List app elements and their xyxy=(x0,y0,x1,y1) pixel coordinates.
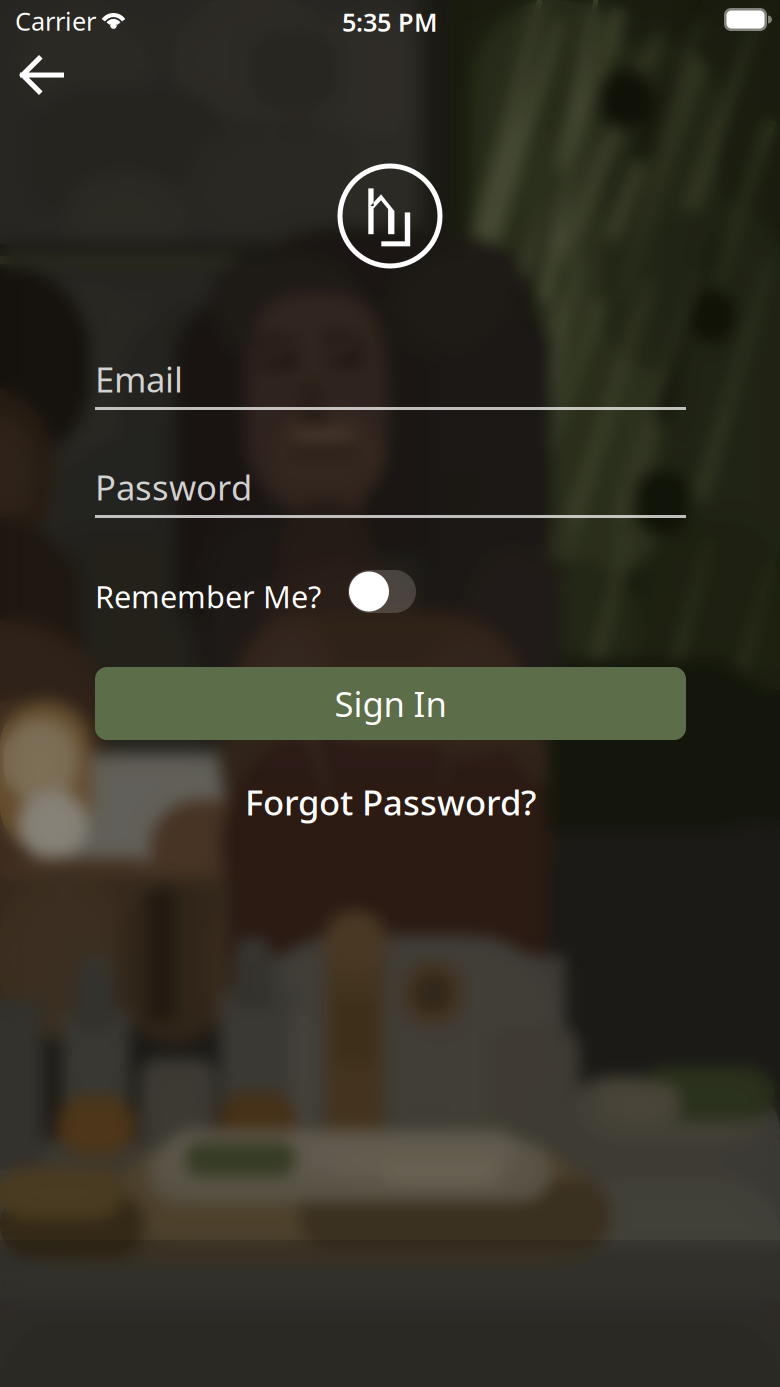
staticText: 5:35 PM xyxy=(342,5,438,39)
staticText: Email xyxy=(95,356,183,402)
button[interactable]: Forgot Password? xyxy=(95,778,686,826)
button[interactable]: Back xyxy=(12,44,82,106)
staticText: Remember Me? xyxy=(95,576,321,617)
staticText: Carrier xyxy=(15,4,96,38)
staticText: Password xyxy=(95,464,252,510)
staticText: Sign In xyxy=(334,680,446,726)
button[interactable]: Remember Me xyxy=(348,570,416,613)
button[interactable]: Sign In xyxy=(95,667,686,740)
staticText: Forgot Password? xyxy=(245,779,536,825)
